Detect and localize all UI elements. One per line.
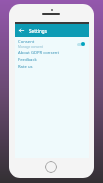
staticText: Feedback — [18, 57, 37, 63]
staticText: About GDPR consent — [18, 50, 59, 56]
button[interactable]: About GDPR consent — [15, 49, 89, 56]
staticText: Settings — [29, 28, 47, 34]
staticText: Manage consent — [18, 45, 43, 49]
button[interactable]: Rate us — [15, 63, 89, 70]
button[interactable]: Feedback — [15, 56, 89, 63]
staticText: Consent — [18, 39, 35, 45]
staticText: Rate us — [18, 64, 33, 70]
button[interactable]: Back — [17, 26, 26, 35]
button[interactable]: Consent — [15, 39, 89, 49]
